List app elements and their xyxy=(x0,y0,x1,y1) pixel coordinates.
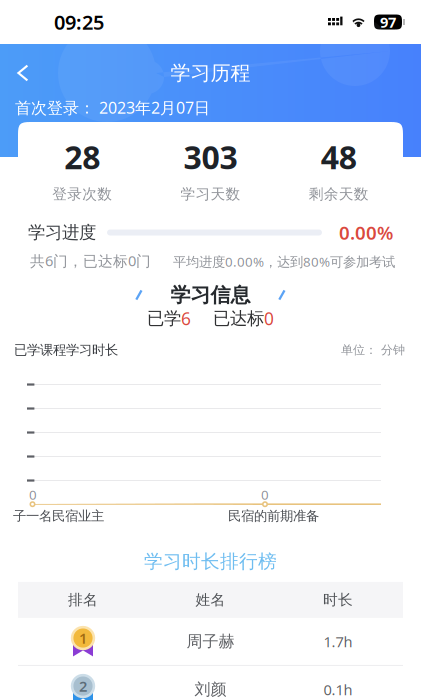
staticText: 子一名民宿业主 xyxy=(13,508,104,524)
button[interactable]: 1 xyxy=(18,618,403,665)
staticText: 学习进度 xyxy=(28,222,96,243)
staticText: 0.1h xyxy=(323,680,352,699)
staticText: 2 xyxy=(79,676,87,696)
staticText: 已学课程学习时长 xyxy=(14,342,118,358)
staticText: 1 xyxy=(79,628,87,648)
staticText: 民宿的前期准备 xyxy=(228,508,319,524)
staticText: 平均进度0.00%，达到80%可参加考试 xyxy=(173,253,395,270)
staticText: 姓名 xyxy=(195,591,225,609)
button[interactable]: 2 xyxy=(18,666,403,700)
staticText: 学习天数 xyxy=(180,185,240,203)
staticText: 剩余天数 xyxy=(309,185,369,203)
staticText: 周子赫 xyxy=(186,632,234,651)
staticText: 0 xyxy=(261,486,269,503)
staticText: 97 xyxy=(380,12,396,32)
staticText: 学习历程 xyxy=(170,61,250,85)
staticText: 首次登录： 2023年2月07日 xyxy=(15,97,210,118)
staticText: 303 xyxy=(183,136,237,178)
staticText: 共6门，已达标0门 xyxy=(30,251,151,270)
staticText: 1.7h xyxy=(323,632,352,651)
staticText: 0 xyxy=(264,307,274,330)
staticText: 学习信息 xyxy=(170,283,250,307)
staticText: 已学 xyxy=(147,308,181,329)
staticText: 时长 xyxy=(323,591,353,609)
staticText: 单位： 分钟 xyxy=(341,343,405,357)
staticText: 学习时长排行榜 xyxy=(144,550,277,573)
staticText: 28 xyxy=(64,136,100,178)
staticText: 已达标 xyxy=(213,308,264,329)
staticText: 排名 xyxy=(68,591,98,609)
staticText: 09:25 xyxy=(54,9,104,35)
staticText: 0.00% xyxy=(339,220,393,245)
staticText: 0 xyxy=(29,486,37,503)
staticText: 登录次数 xyxy=(52,185,112,203)
button[interactable]: 返回 xyxy=(0,57,46,89)
staticText: 6 xyxy=(181,307,191,330)
staticText: 刘颜 xyxy=(194,680,226,699)
staticText: 48 xyxy=(321,136,357,178)
